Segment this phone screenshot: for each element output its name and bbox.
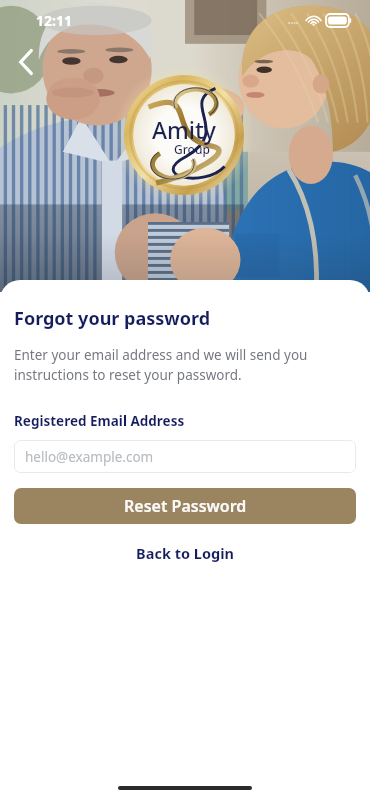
staticText: Forgot your password — [14, 306, 211, 331]
staticText: Back to Login — [136, 543, 234, 563]
button[interactable]: hello@example.com — [14, 440, 356, 473]
staticText: Reset Password — [124, 495, 247, 517]
staticText: 12:11 — [36, 11, 72, 30]
staticText: Registered Email Address — [14, 412, 185, 430]
staticText: hello@example.com — [25, 448, 154, 466]
button[interactable]: Back — [6, 42, 46, 82]
staticText: Enter your email address and we will sen… — [14, 346, 308, 384]
button[interactable]: Reset Password — [14, 488, 356, 524]
button[interactable]: Back to Login — [14, 538, 356, 568]
staticText: Group — [174, 141, 210, 157]
staticText: Amity — [152, 114, 217, 145]
